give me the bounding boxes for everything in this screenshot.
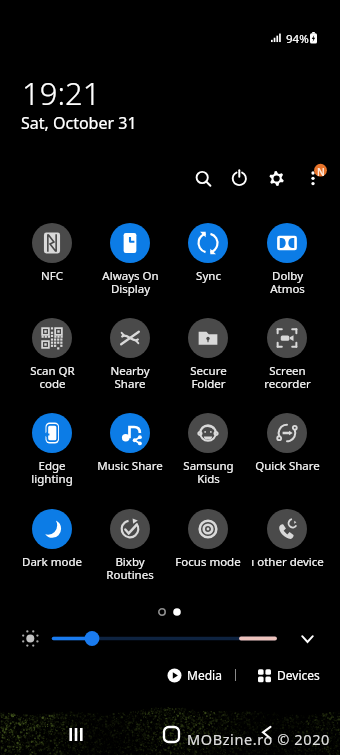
button[interactable]: Media — [167, 667, 222, 683]
button[interactable]: Dolby Atmos — [248, 223, 326, 296]
staticText: Sat, October 31 — [21, 112, 137, 134]
staticText: Devices — [277, 667, 320, 683]
button[interactable]: Always On Display — [91, 223, 169, 296]
staticText: Focus mode — [175, 554, 241, 570]
staticText: 19:21 — [22, 72, 101, 114]
button[interactable]: Scan QR code — [13, 318, 91, 391]
staticText: Samsung Kids — [183, 458, 234, 486]
button[interactable]: Music Share — [91, 413, 169, 474]
staticText: Edge lighting — [31, 458, 73, 486]
button[interactable]: Recent apps — [63, 722, 87, 746]
button[interactable]: Focus mode — [169, 509, 247, 570]
staticText: Sync — [196, 268, 221, 284]
staticText: Quick Share — [255, 458, 320, 474]
button[interactable]: Quick Share — [248, 413, 326, 474]
staticText: NFC — [41, 268, 63, 284]
staticText: Bixby Routines — [106, 554, 154, 582]
button[interactable]: More options — [300, 158, 332, 190]
button[interactable]: Secure Folder — [169, 318, 247, 391]
button[interactable]: Power off — [227, 166, 252, 191]
staticText: Secure Folder — [190, 363, 227, 391]
staticText: MOBzine.ro © 2020 — [187, 729, 330, 749]
button[interactable]: Search — [190, 166, 215, 191]
button[interactable]: Devices — [257, 667, 320, 683]
button[interactable]: Expand brightness — [296, 627, 320, 651]
button[interactable]: Sync — [169, 223, 247, 284]
button[interactable]: Nearby Share — [91, 318, 169, 391]
staticText: N — [317, 165, 325, 179]
staticText: Media — [187, 667, 222, 683]
staticText: Scan QR code — [30, 363, 75, 391]
staticText: Dolby Atmos — [270, 268, 305, 296]
button[interactable]: Home — [159, 722, 183, 746]
button[interactable]: Dark mode — [13, 509, 91, 570]
button[interactable]: Back — [255, 720, 279, 744]
button[interactable]: Samsung Kids — [169, 413, 247, 486]
button[interactable]: NFC — [13, 223, 91, 284]
staticText: 94% — [286, 31, 309, 47]
staticText: Always On Display — [102, 268, 159, 296]
staticText: Music Share — [97, 458, 163, 474]
button[interactable]: Screen recorder — [248, 318, 326, 391]
button[interactable]: Settings — [264, 166, 289, 191]
staticText: Nearby Share — [110, 363, 150, 391]
button[interactable]: Edge lighting — [13, 413, 91, 486]
button[interactable]: Bixby Routines — [91, 509, 169, 582]
staticText: Dark mode — [22, 554, 82, 570]
button[interactable]: ı other device — [248, 509, 326, 570]
staticText: Screen recorder — [264, 363, 311, 391]
staticText: ı other device — [251, 554, 324, 570]
